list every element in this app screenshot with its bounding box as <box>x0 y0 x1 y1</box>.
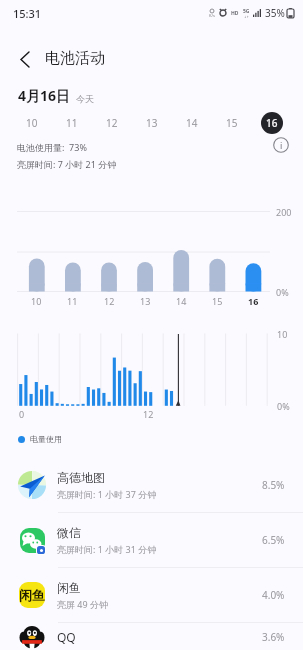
button[interactable]: 10 <box>11 110 52 135</box>
button[interactable]: QQ <box>0 623 303 650</box>
staticText: 电池使用量: 73% <box>17 141 87 153</box>
button[interactable]: 高德地图 <box>0 458 303 512</box>
staticText: 4月16日 <box>18 86 71 105</box>
staticText: 15:31 <box>13 6 42 21</box>
staticText: QQ <box>57 629 76 645</box>
staticText: 16 <box>266 116 278 130</box>
staticText: K/s <box>209 13 215 18</box>
staticText: 亮屏时间: 1 小时 31 分钟 <box>57 543 157 555</box>
staticText: 15 <box>212 295 223 307</box>
staticText: 0 <box>19 408 25 420</box>
staticText: 闲鱼 <box>57 580 81 595</box>
staticText: 14 <box>186 116 198 130</box>
staticText: 16 <box>248 295 259 307</box>
staticText: 15 <box>226 116 238 130</box>
staticText: 5G <box>243 8 250 15</box>
staticText: 0% <box>277 400 290 412</box>
staticText: 10 <box>26 116 38 130</box>
button[interactable]: 14 <box>172 110 212 135</box>
staticText: 3.6% <box>262 630 285 644</box>
button[interactable]: 15 <box>212 110 252 135</box>
staticText: 4.0% <box>262 588 285 602</box>
staticText: 电池活动 <box>45 49 105 68</box>
staticText: 亮屏时间: 1 小时 37 分钟 <box>57 488 157 500</box>
staticText: 亮屏 49 分钟 <box>57 598 108 610</box>
staticText: 8.5% <box>262 478 285 492</box>
staticText: 13 <box>146 116 158 130</box>
button[interactable]: Back <box>11 45 39 73</box>
staticText: 亮屏时间: 7 小时 21 分钟 <box>17 158 117 170</box>
staticText: 200 <box>276 206 292 218</box>
staticText: 10 <box>277 328 288 340</box>
staticText: 11 <box>67 295 78 307</box>
staticText: 闲鱼 <box>19 587 45 603</box>
staticText: ↓↑ <box>244 15 250 18</box>
button[interactable]: Info <box>273 137 289 153</box>
staticText: 6.5% <box>262 533 285 547</box>
staticText: 35% <box>265 6 285 20</box>
button[interactable]: 11 <box>52 110 92 135</box>
staticText: 12 <box>104 295 115 307</box>
button[interactable]: 16 <box>252 110 292 135</box>
staticText: 10 <box>31 295 42 307</box>
staticText: 12 <box>143 408 154 420</box>
button[interactable]: 13 <box>132 110 172 135</box>
button[interactable]: 微信 <box>0 513 303 567</box>
button[interactable]: 闲鱼 <box>0 568 303 622</box>
staticText: 今天 <box>76 93 94 104</box>
staticText: 14 <box>176 295 187 307</box>
staticText: HD <box>231 10 239 17</box>
staticText: 13 <box>140 295 151 307</box>
staticText: 11 <box>66 116 78 130</box>
staticText: 电量使用 <box>30 434 62 444</box>
staticText: 12 <box>106 116 118 130</box>
staticText: 高德地图 <box>57 470 105 485</box>
staticText: 微信 <box>57 525 81 540</box>
button[interactable]: 12 <box>92 110 132 135</box>
staticText: 0% <box>276 286 289 298</box>
staticText: i <box>280 139 283 151</box>
